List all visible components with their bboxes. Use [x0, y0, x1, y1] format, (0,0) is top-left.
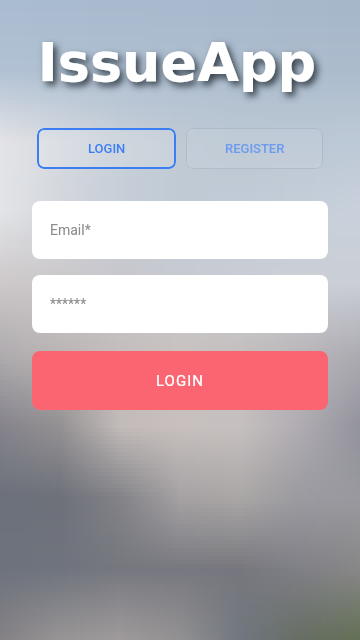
staticText: LOGIN: [88, 141, 126, 156]
button[interactable]: Email*: [32, 201, 328, 259]
button[interactable]: LOGIN: [32, 351, 328, 410]
button[interactable]: LOGIN: [37, 128, 176, 169]
staticText: Email*: [50, 222, 91, 238]
staticText: LOGIN: [156, 372, 204, 390]
staticText: REGISTER: [225, 141, 285, 156]
staticText: IssueApp: [0, 31, 357, 94]
button[interactable]: REGISTER: [186, 128, 323, 169]
staticText: ******: [50, 296, 87, 312]
button[interactable]: ******: [32, 275, 328, 333]
